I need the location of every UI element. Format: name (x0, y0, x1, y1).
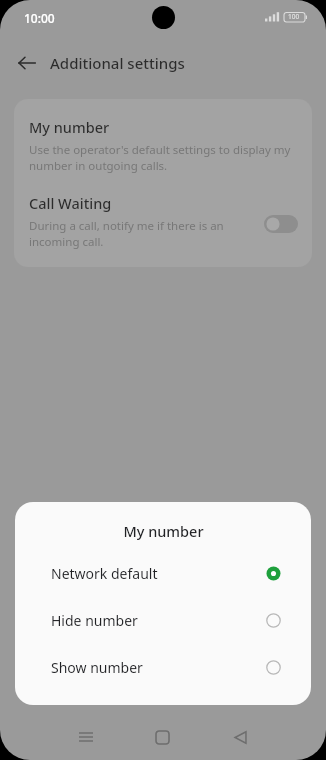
staticText: During a call, notify me if there is an … (29, 218, 224, 249)
button[interactable]: Back (10, 46, 44, 80)
button[interactable]: Network default (15, 550, 311, 597)
button[interactable]: My number (14, 99, 312, 177)
staticText: My number (123, 521, 204, 541)
staticText: My number (29, 117, 110, 137)
button[interactable]: Show number (15, 644, 311, 691)
button[interactable]: Recent apps (63, 714, 109, 760)
staticText: Additional settings (50, 53, 185, 73)
button[interactable]: Call Waiting toggle (264, 215, 298, 233)
button[interactable]: Back (217, 714, 263, 760)
staticText: Use the operator's default settings to d… (29, 142, 291, 173)
button[interactable]: Hide number (15, 597, 311, 644)
staticText: 100 (288, 12, 300, 21)
staticText: 10:00 (24, 10, 55, 26)
staticText: Hide number (51, 611, 266, 630)
staticText: Show number (51, 658, 266, 677)
button[interactable]: Home (139, 714, 185, 760)
staticText: Network default (51, 564, 266, 583)
staticText: Call Waiting (29, 193, 112, 213)
button[interactable]: Call Waiting (14, 193, 312, 267)
